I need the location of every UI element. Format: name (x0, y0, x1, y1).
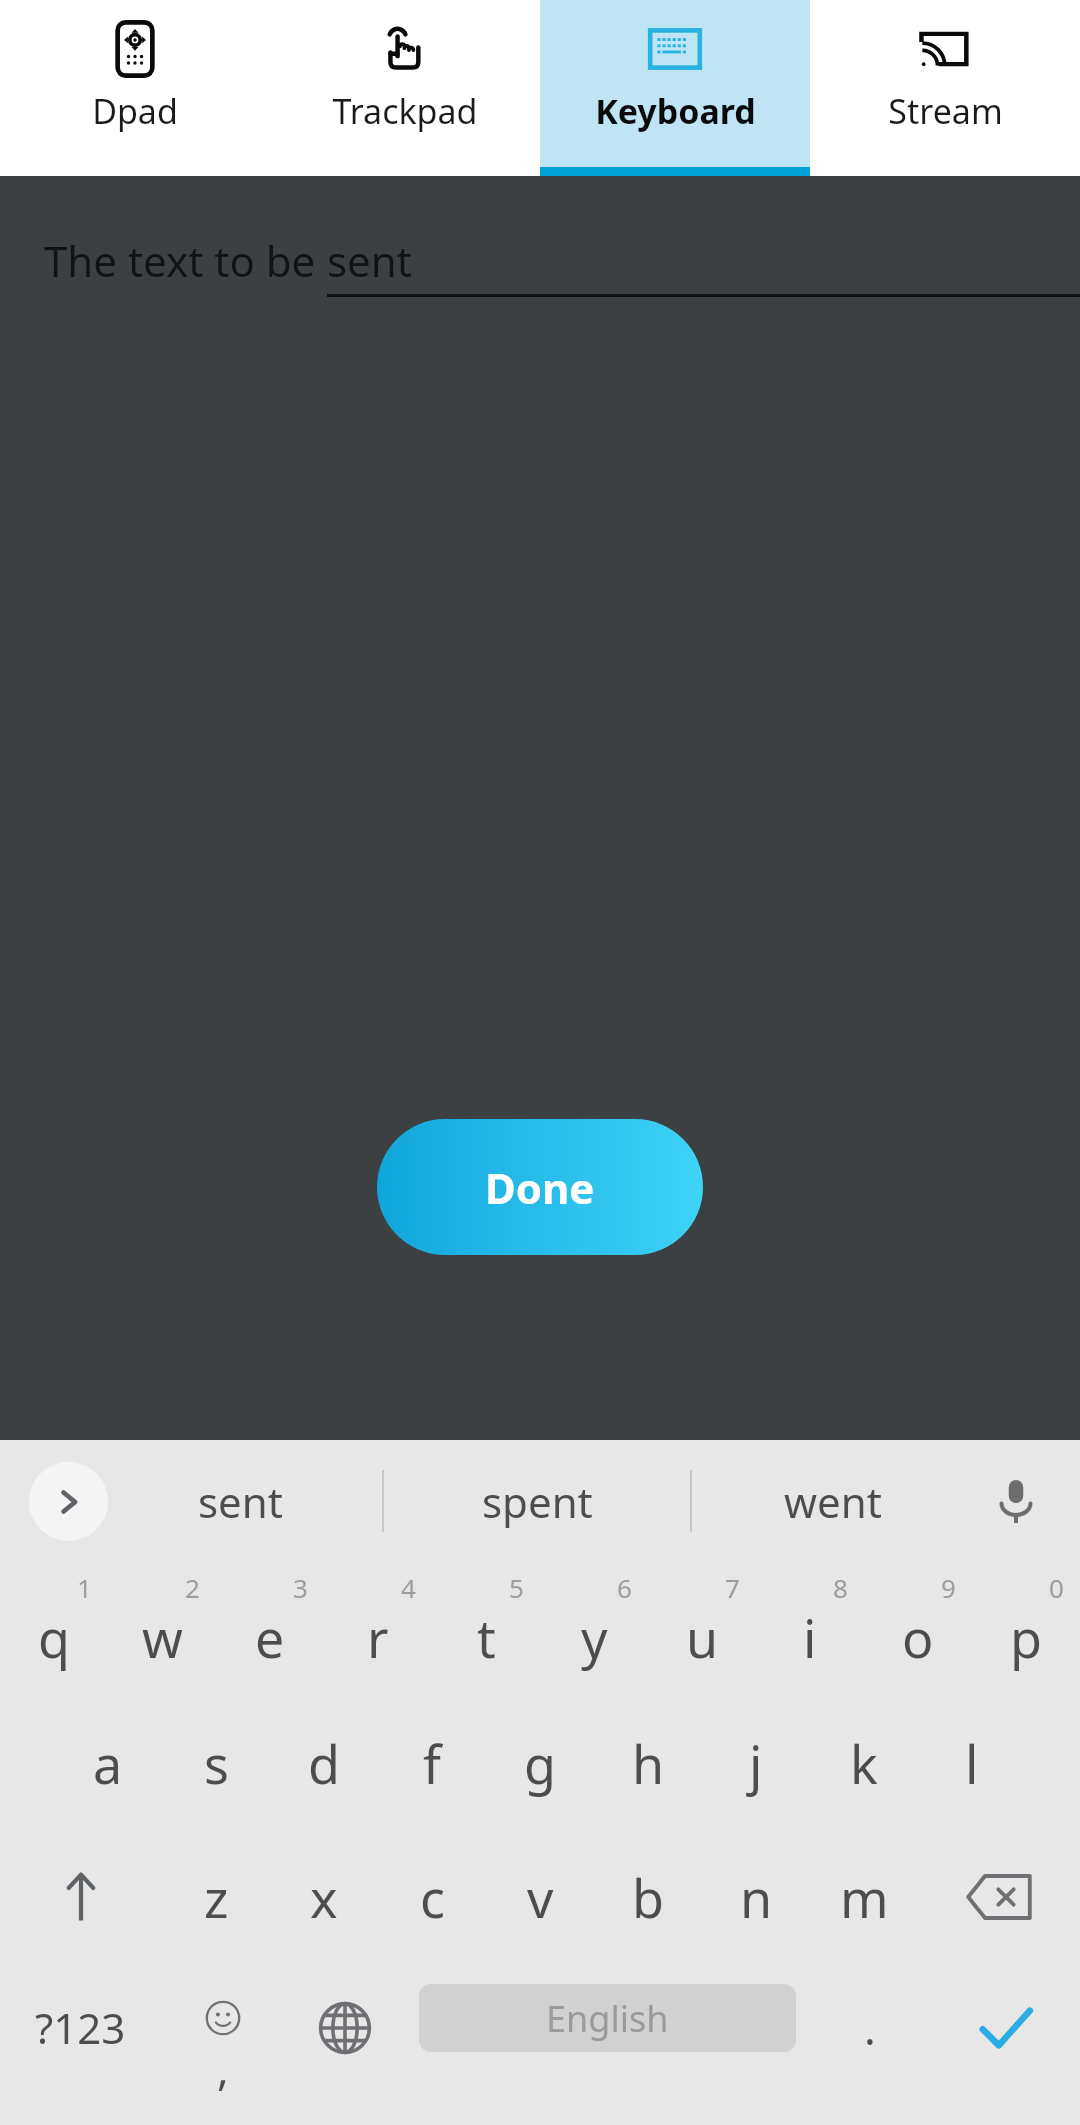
button[interactable]: p (972, 1562, 1080, 1696)
button[interactable]: Voice input (974, 1459, 1058, 1543)
button[interactable]: g (486, 1696, 594, 1830)
button[interactable]: o (864, 1562, 972, 1696)
staticText: Keyboard (595, 88, 756, 134)
button[interactable]: m (810, 1830, 918, 1964)
staticText: 2 (185, 1570, 200, 1605)
button[interactable]: Expand suggestions (29, 1462, 108, 1541)
staticText: v (527, 1862, 554, 1933)
button[interactable]: Change language (285, 1964, 405, 2119)
staticText: e (255, 1602, 285, 1673)
staticText: i (803, 1602, 817, 1673)
button[interactable]: k (810, 1696, 918, 1830)
staticText: ?123 (35, 1999, 126, 2056)
staticText: 9 (941, 1570, 956, 1605)
button[interactable]: spent (427, 1440, 647, 1562)
button[interactable]: i (756, 1562, 864, 1696)
staticText: , (217, 2038, 229, 2098)
button[interactable]: x (270, 1830, 378, 1964)
staticText: x (310, 1862, 338, 1933)
staticText: t (477, 1602, 496, 1673)
button[interactable]: English (419, 1984, 796, 2052)
staticText: 0 (1049, 1570, 1064, 1605)
button[interactable]: Emoji and comma (160, 1964, 285, 2119)
staticText: Done (485, 1159, 595, 1216)
button[interactable]: sent (130, 1440, 350, 1562)
staticText: 8 (833, 1570, 848, 1605)
button[interactable]: r (324, 1562, 432, 1696)
button[interactable]: y (540, 1562, 648, 1696)
button[interactable]: Trackpad (270, 0, 540, 176)
button[interactable]: e (216, 1562, 324, 1696)
button[interactable]: b (594, 1830, 702, 1964)
button[interactable]: ?123 (0, 1964, 160, 2119)
staticText: n (740, 1862, 773, 1933)
staticText: k (850, 1728, 878, 1799)
staticText: spent (482, 1473, 593, 1530)
button[interactable]: h (594, 1696, 702, 1830)
staticText: The text to be (44, 232, 327, 289)
staticText: w (142, 1602, 183, 1673)
staticText: h (632, 1728, 665, 1799)
staticText: 3 (293, 1570, 308, 1605)
staticText: p (1010, 1602, 1042, 1673)
staticText: q (38, 1602, 70, 1673)
staticText: y (581, 1602, 608, 1673)
button[interactable]: f (378, 1696, 486, 1830)
button[interactable]: u (648, 1562, 756, 1696)
staticText: d (308, 1728, 340, 1799)
button[interactable]: Keyboard (540, 0, 810, 176)
staticText: l (965, 1728, 979, 1799)
staticText: went (784, 1473, 882, 1530)
button[interactable]: q (0, 1562, 108, 1696)
staticText: 6 (617, 1570, 632, 1605)
staticText: 1 (77, 1570, 92, 1605)
button[interactable]: v (486, 1830, 594, 1964)
staticText: m (840, 1862, 889, 1933)
staticText: g (524, 1728, 556, 1799)
staticText: c (420, 1862, 445, 1933)
staticText: o (902, 1602, 934, 1673)
staticText: Stream (888, 88, 1003, 134)
staticText: z (204, 1862, 229, 1933)
staticText: f (423, 1728, 441, 1799)
staticText: 5 (509, 1570, 524, 1605)
button[interactable]: j (702, 1696, 810, 1830)
staticText: s (204, 1728, 229, 1799)
button[interactable]: Stream (810, 0, 1080, 176)
button[interactable]: t (432, 1562, 540, 1696)
staticText: 4 (401, 1570, 416, 1605)
staticText: 7 (725, 1570, 740, 1605)
button[interactable]: Done (377, 1119, 703, 1255)
button[interactable]: c (378, 1830, 486, 1964)
button[interactable]: Dpad (0, 0, 270, 176)
staticText: Trackpad (332, 88, 478, 134)
button[interactable]: went (723, 1440, 943, 1562)
staticText: English (546, 1994, 669, 2043)
button[interactable]: s (162, 1696, 270, 1830)
staticText: sent (198, 1473, 283, 1530)
staticText: sent (327, 232, 412, 289)
staticText: r (367, 1602, 389, 1673)
staticText: a (93, 1728, 123, 1799)
button[interactable]: . (810, 1964, 930, 2119)
button[interactable]: Shift (0, 1830, 162, 1964)
button[interactable]: a (54, 1696, 162, 1830)
button[interactable]: d (270, 1696, 378, 1830)
button[interactable]: n (702, 1830, 810, 1964)
button[interactable]: l (918, 1696, 1026, 1830)
staticText: . (864, 1998, 876, 2058)
staticText: Dpad (92, 88, 178, 134)
staticText: j (749, 1728, 763, 1799)
staticText: u (686, 1602, 719, 1673)
button[interactable]: Backspace (918, 1830, 1080, 1964)
button[interactable]: z (162, 1830, 270, 1964)
staticText: b (632, 1862, 664, 1933)
button[interactable]: w (108, 1562, 216, 1696)
button[interactable]: Enter (930, 1964, 1080, 2119)
